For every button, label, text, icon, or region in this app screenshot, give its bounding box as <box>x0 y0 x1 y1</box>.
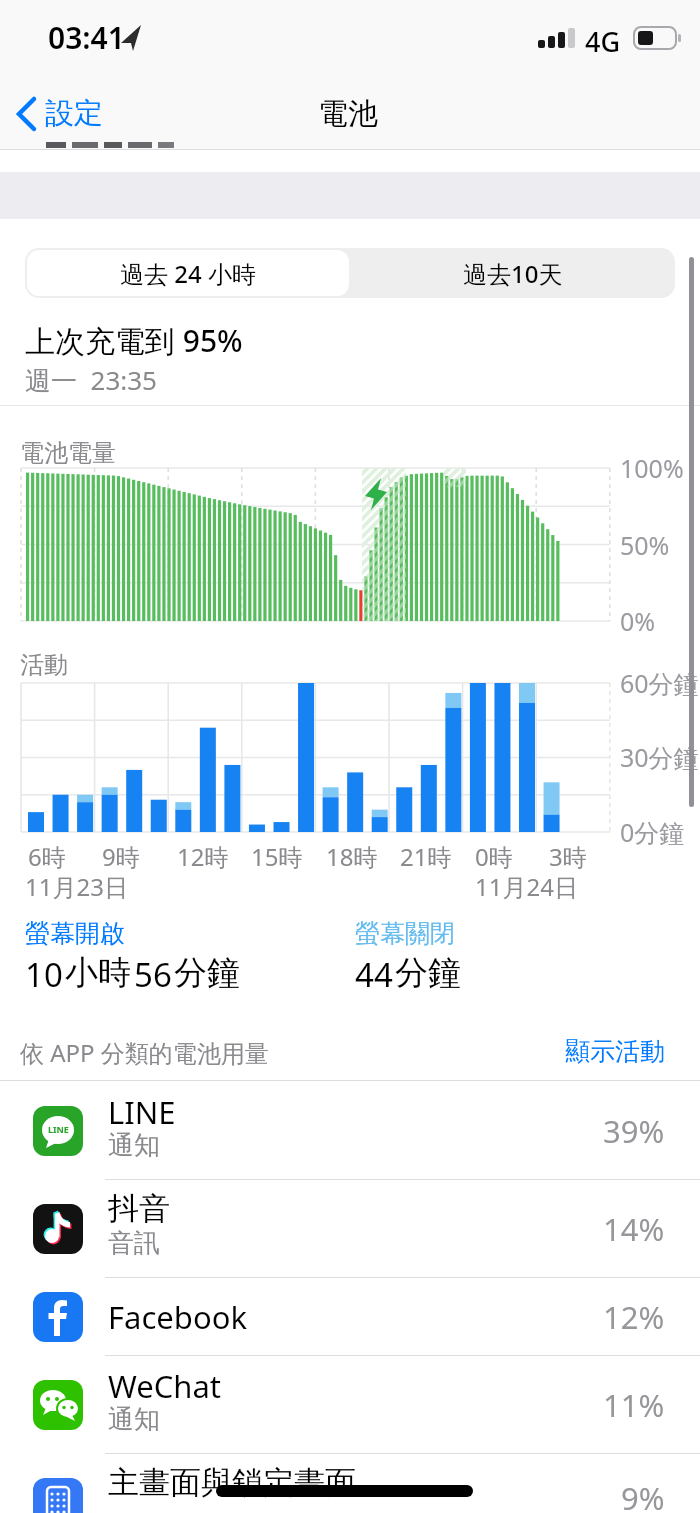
staticText: LINE <box>108 1091 176 1133</box>
staticText: 11月24日 <box>475 870 578 903</box>
staticText: 11月23日 <box>25 870 128 903</box>
staticText: 螢幕關閉 <box>355 918 455 949</box>
staticText: 39% <box>603 1110 665 1152</box>
staticText: 6時 <box>28 840 66 873</box>
staticText: 56 <box>134 952 172 997</box>
staticText: Facebook <box>108 1296 247 1338</box>
staticText: 音訊 <box>108 1227 160 1260</box>
staticText: 顯示活動 <box>565 1036 665 1067</box>
staticText: 通知 <box>108 1129 160 1162</box>
button[interactable]: 過去 24 小時 <box>27 250 349 296</box>
staticText: 活動 <box>20 650 68 680</box>
staticText: 上次充電到 95% <box>25 320 243 361</box>
staticText: 15時 <box>251 840 303 873</box>
staticText: 0% <box>620 604 656 638</box>
staticText: 0分鐘 <box>620 815 685 849</box>
staticText: 分鐘 <box>174 952 240 994</box>
staticText: 44 <box>355 952 393 997</box>
staticText: 100% <box>620 451 684 485</box>
button[interactable]: 主畫面與鎖定畫面 <box>0 1454 700 1513</box>
staticText: 小時 <box>65 952 131 994</box>
staticText: 主畫面與鎖定畫面 <box>108 1463 356 1502</box>
staticText: 過去10天 <box>463 257 563 290</box>
staticText: 14% <box>603 1208 665 1250</box>
staticText: 週一 23:35 <box>25 362 157 398</box>
staticText: 3時 <box>549 840 587 873</box>
staticText: LINE <box>48 1123 69 1135</box>
staticText: 抖音 <box>108 1189 170 1228</box>
staticText: 03:41 <box>48 17 125 58</box>
staticText: 依 APP 分類的電池用量 <box>20 1036 269 1069</box>
button[interactable]: 抖音 <box>0 1180 700 1278</box>
button[interactable] <box>0 920 350 1010</box>
staticText: 4G <box>585 23 621 60</box>
staticText: 分鐘 <box>395 952 461 994</box>
button[interactable]: WeChat <box>0 1356 700 1454</box>
staticText: 螢幕開啟 <box>25 918 125 949</box>
staticText: 過去 24 小時 <box>120 257 256 290</box>
button[interactable]: 設定 <box>10 88 140 140</box>
staticText: 9% <box>621 1477 665 1513</box>
staticText: 10 <box>25 952 63 997</box>
staticText: 18時 <box>326 840 378 873</box>
button[interactable]: 過去10天 <box>350 248 675 298</box>
staticText: 9時 <box>102 840 140 873</box>
button[interactable]: LINE <box>0 1082 700 1180</box>
staticText: 12% <box>603 1296 665 1338</box>
staticText: 11% <box>603 1384 665 1426</box>
button[interactable]: Facebook <box>0 1278 700 1356</box>
staticText: 60分鐘 <box>620 666 699 700</box>
staticText: 21時 <box>400 840 452 873</box>
button[interactable] <box>530 1028 675 1070</box>
staticText: 通知 <box>108 1403 160 1436</box>
staticText: WeChat <box>108 1365 222 1407</box>
staticText: 設定 <box>45 95 103 132</box>
staticText: 12時 <box>177 840 229 873</box>
staticText: 50% <box>620 528 670 562</box>
staticText: 0時 <box>475 840 513 873</box>
staticText: 電池 <box>318 95 378 133</box>
staticText: 電池電量 <box>20 438 116 468</box>
staticText: 30分鐘 <box>620 740 699 774</box>
